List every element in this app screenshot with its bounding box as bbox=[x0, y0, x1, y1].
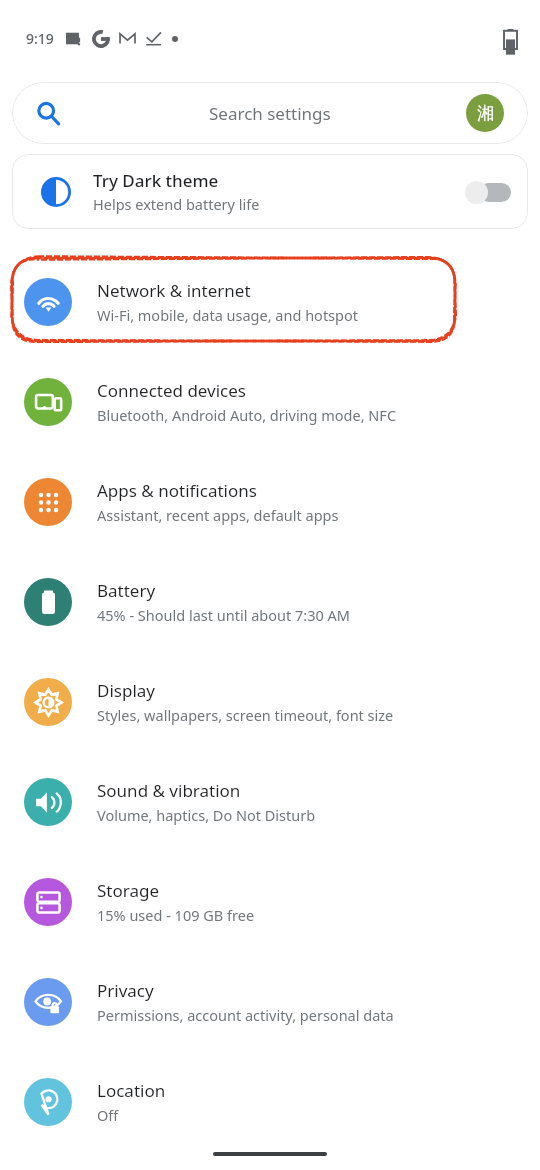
button[interactable]: Account bbox=[466, 94, 504, 132]
staticText: Try Dark theme bbox=[93, 169, 219, 192]
button[interactable]: Storage bbox=[0, 852, 540, 952]
staticText: Storage bbox=[97, 879, 160, 902]
staticText: Search settings bbox=[209, 102, 331, 125]
button[interactable]: Sound & vibration bbox=[0, 752, 540, 852]
button[interactable]: Privacy bbox=[0, 952, 540, 1052]
button[interactable]: Connected devices bbox=[0, 352, 540, 452]
button[interactable]: Apps & notifications bbox=[0, 452, 540, 552]
staticText: 湘 bbox=[477, 103, 494, 124]
staticText: Connected devices bbox=[97, 379, 247, 402]
staticText: Volume, haptics, Do Not Disturb bbox=[97, 805, 316, 825]
staticText: Helps extend battery life bbox=[93, 194, 260, 214]
staticText: Apps & notifications bbox=[97, 479, 257, 502]
button[interactable]: Display bbox=[0, 652, 540, 752]
button[interactable]: Network & internet bbox=[0, 252, 540, 352]
button[interactable]: Battery bbox=[0, 552, 540, 652]
staticText: Assistant, recent apps, default apps bbox=[97, 505, 339, 525]
other: Search bbox=[37, 102, 60, 125]
staticText: Network & internet bbox=[97, 279, 251, 302]
button[interactable]: Try Dark theme bbox=[12, 154, 528, 229]
staticText: Wi-Fi, mobile, data usage, and hotspot bbox=[97, 305, 358, 325]
staticText: 9:19 bbox=[26, 29, 54, 48]
staticText: Permissions, account activity, personal … bbox=[97, 1005, 394, 1025]
button[interactable]: Location bbox=[0, 1052, 540, 1152]
button[interactable]: Dark theme toggle bbox=[463, 175, 515, 209]
staticText: Privacy bbox=[97, 979, 154, 1002]
staticText: Location bbox=[97, 1079, 166, 1102]
staticText: 45% - Should last until about 7:30 AM bbox=[97, 605, 350, 625]
button[interactable]: Search bbox=[12, 82, 528, 144]
staticText: Battery bbox=[97, 579, 156, 602]
staticText: Off bbox=[97, 1105, 119, 1125]
staticText: 15% used - 109 GB free bbox=[97, 905, 255, 925]
staticText: Sound & vibration bbox=[97, 779, 241, 802]
staticText: Bluetooth, Android Auto, driving mode, N… bbox=[97, 405, 397, 425]
staticText: Display bbox=[97, 679, 155, 702]
staticText: Styles, wallpapers, screen timeout, font… bbox=[97, 705, 394, 725]
